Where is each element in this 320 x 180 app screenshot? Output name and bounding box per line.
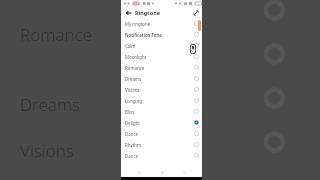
button[interactable]: Notification Tone bbox=[121, 29, 202, 40]
button[interactable]: Back bbox=[134, 167, 144, 177]
staticText: Romance bbox=[20, 23, 93, 46]
staticText: Romance bbox=[125, 65, 194, 71]
button[interactable]: Moonlight bbox=[121, 51, 202, 62]
button[interactable]: Rhythm bbox=[121, 139, 202, 150]
staticText: Moonlight bbox=[125, 54, 194, 60]
button[interactable]: Dance bbox=[121, 128, 202, 139]
button[interactable]: Dreams bbox=[121, 73, 202, 84]
staticText: Ringtone bbox=[135, 9, 160, 16]
button[interactable]: Dance bbox=[121, 150, 202, 161]
staticText: Notification Tone bbox=[125, 32, 194, 38]
staticText: Dance bbox=[125, 153, 194, 159]
staticText: Dreams bbox=[125, 76, 194, 82]
staticText: Rhythm bbox=[125, 142, 194, 148]
staticText: Calm bbox=[125, 43, 194, 49]
button[interactable]: My ringtone bbox=[121, 18, 202, 29]
button[interactable]: More options bbox=[191, 8, 200, 17]
button[interactable]: Recent apps bbox=[179, 167, 189, 177]
button[interactable]: Home bbox=[157, 167, 167, 177]
button[interactable]: Back bbox=[124, 8, 133, 17]
staticText: Visions bbox=[125, 87, 194, 93]
staticText: Dance bbox=[125, 131, 194, 137]
staticText: Delight bbox=[125, 120, 194, 126]
staticText: My ringtone bbox=[125, 21, 194, 27]
button[interactable]: Romance bbox=[121, 62, 202, 73]
button[interactable]: Visions bbox=[121, 84, 202, 95]
staticText: Longing bbox=[125, 98, 194, 104]
button[interactable]: Calm bbox=[121, 40, 202, 51]
staticText: Visions bbox=[20, 139, 74, 162]
button[interactable]: Longing bbox=[121, 95, 202, 106]
button[interactable]: Bliss bbox=[121, 106, 202, 117]
staticText: Dreams bbox=[20, 93, 81, 116]
staticText: Bliss bbox=[125, 109, 194, 115]
button[interactable]: Delight bbox=[121, 117, 202, 128]
